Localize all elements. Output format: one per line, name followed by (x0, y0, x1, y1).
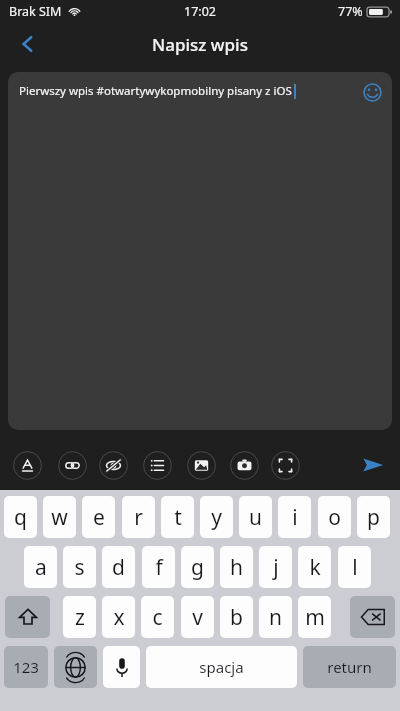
staticText: b (230, 603, 243, 632)
staticText: 77% (338, 3, 363, 20)
staticText: l (352, 553, 358, 582)
staticText: s (74, 553, 85, 582)
staticText: 17:02 (184, 3, 216, 20)
button[interactable]: c (141, 596, 174, 638)
staticText: w (51, 503, 68, 532)
staticText: a (35, 553, 47, 582)
staticText: q (14, 503, 27, 532)
button[interactable]: g (181, 546, 214, 588)
button[interactable]: Shift (5, 596, 50, 638)
button[interactable]: Image (187, 451, 216, 480)
button[interactable]: d (102, 546, 135, 588)
button[interactable]: Spoiler (99, 451, 128, 480)
button[interactable]: return (303, 646, 396, 688)
button[interactable]: q (4, 496, 37, 538)
button[interactable]: z (63, 596, 96, 638)
button[interactable]: e (82, 496, 115, 538)
staticText: e (93, 503, 105, 532)
staticText: z (75, 603, 85, 632)
button[interactable]: Camera (230, 451, 259, 480)
staticText: c (152, 603, 163, 632)
staticText: v (192, 603, 203, 632)
button[interactable]: x (102, 596, 135, 638)
button[interactable]: f (142, 546, 175, 588)
staticText: m (305, 603, 325, 632)
button[interactable]: b (220, 596, 253, 638)
button[interactable]: Send (356, 448, 390, 482)
staticText: i (292, 503, 298, 532)
button[interactable]: l (338, 546, 371, 588)
staticText: Brak SIM (9, 3, 62, 20)
staticText: h (230, 553, 243, 582)
staticText: return (327, 657, 372, 677)
staticText: u (249, 503, 262, 532)
button[interactable]: Back (8, 24, 48, 64)
button[interactable]: h (220, 546, 253, 588)
staticText: d (112, 553, 125, 582)
button[interactable]: i (278, 496, 311, 538)
staticText: o (328, 503, 341, 532)
button[interactable]: m (298, 596, 331, 638)
button[interactable]: j (259, 546, 292, 588)
button[interactable]: v (181, 596, 214, 638)
staticText: spacja (199, 657, 244, 677)
button[interactable]: a (24, 546, 57, 588)
staticText: p (367, 503, 380, 532)
button[interactable]: p (357, 496, 390, 538)
staticText: g (191, 553, 204, 582)
button[interactable]: s (63, 546, 96, 588)
button[interactable]: n (259, 596, 292, 638)
staticText: Napisz wpis (152, 33, 248, 56)
button[interactable]: k (298, 546, 331, 588)
button[interactable]: Backspace (350, 596, 395, 638)
staticText: x (113, 603, 125, 632)
button[interactable]: spacja (146, 646, 297, 688)
staticText: y (211, 503, 222, 532)
button[interactable]: Fullscreen (271, 451, 300, 480)
button[interactable]: u (239, 496, 272, 538)
button[interactable]: r (122, 496, 155, 538)
button[interactable]: Emoji (358, 78, 386, 106)
button[interactable]: Pierwszy wpis #otwartywykopmobilny pisan… (8, 72, 392, 430)
button[interactable]: Insert link (58, 451, 87, 480)
button[interactable]: y (200, 496, 233, 538)
button[interactable]: Dictate (103, 646, 140, 688)
button[interactable]: o (318, 496, 351, 538)
button[interactable]: t (161, 496, 194, 538)
staticText: 123 (13, 657, 39, 677)
staticText: j (273, 553, 279, 582)
button[interactable]: w (43, 496, 76, 538)
staticText: r (134, 503, 143, 532)
staticText: f (155, 553, 163, 582)
staticText: t (174, 503, 182, 532)
staticText: k (309, 553, 321, 582)
button[interactable]: Change keyboard (54, 646, 97, 688)
staticText: n (269, 603, 282, 632)
button[interactable]: List (143, 451, 172, 480)
staticText: Pierwszy wpis #otwartywykopmobilny pisan… (19, 83, 292, 99)
button[interactable]: Format text (13, 451, 42, 480)
button[interactable]: 123 (4, 646, 48, 688)
